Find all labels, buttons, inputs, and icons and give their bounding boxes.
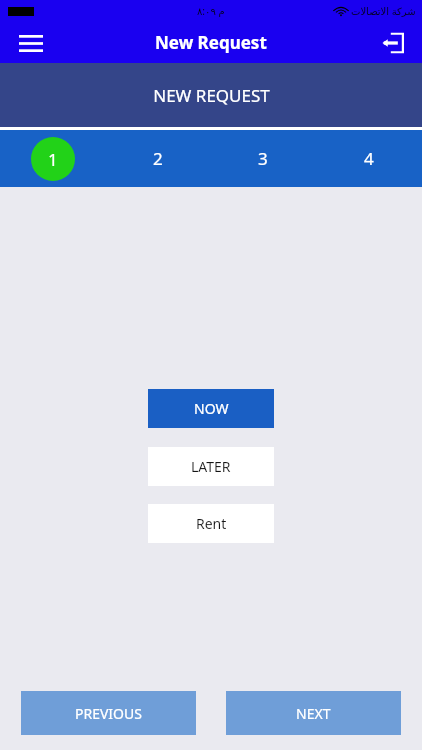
staticText: NEXT: [296, 704, 331, 723]
staticText: PREVIOUS: [75, 704, 142, 723]
button[interactable]: 4: [316, 130, 422, 187]
button[interactable]: Log out: [377, 27, 409, 59]
staticText: 4: [364, 147, 374, 170]
button[interactable]: 3: [210, 130, 316, 187]
staticText: 1: [48, 148, 58, 171]
staticText: NEW REQUEST: [153, 84, 270, 107]
button[interactable]: Rent: [148, 504, 274, 543]
staticText: 3: [258, 147, 268, 170]
button[interactable]: Open navigation menu: [14, 26, 48, 60]
button[interactable]: NOW: [148, 389, 274, 428]
staticText: 2: [153, 147, 163, 170]
staticText: LATER: [191, 457, 231, 476]
button[interactable]: LATER: [148, 447, 274, 486]
staticText: New Request: [155, 31, 267, 54]
button[interactable]: 1: [0, 130, 105, 187]
button[interactable]: PREVIOUS: [21, 691, 196, 735]
staticText: م ٨:٠٩: [197, 4, 225, 18]
staticText: Rent: [196, 514, 227, 533]
button[interactable]: 2: [105, 130, 210, 187]
button[interactable]: NEXT: [226, 691, 401, 735]
staticText: شركة الاتصالات: [351, 4, 416, 18]
staticText: NOW: [194, 399, 229, 418]
